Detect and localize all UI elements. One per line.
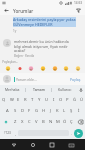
staticText: Beğen · Yanıtla <box>14 54 35 58</box>
button[interactable]: Shift <box>0 116 11 127</box>
staticText: , <box>15 131 16 136</box>
button[interactable]: Emoji 1 <box>16 66 23 71</box>
button[interactable]: Emoji 2 <box>27 66 34 71</box>
staticText: Paylaşılan... <box>0 60 85 64</box>
staticText: J <box>50 108 52 114</box>
button[interactable]: Ü <box>78 94 85 105</box>
button[interactable]: Kullanıcı <box>52 85 77 94</box>
button[interactable]: T <box>29 94 36 105</box>
staticText: D <box>21 108 25 114</box>
button[interactable]: U <box>43 94 50 105</box>
button[interactable]: ?123 <box>2 128 13 138</box>
button[interactable]: A <box>3 105 11 116</box>
button[interactable]: İ <box>75 105 82 116</box>
button[interactable]: X <box>19 116 26 127</box>
staticText: Z <box>14 119 17 125</box>
button[interactable]: Backspace <box>75 116 85 127</box>
button[interactable]: Emoji 5 <box>62 66 69 71</box>
button[interactable]: Ç <box>68 116 75 127</box>
button[interactable]: Emoji 4 <box>51 66 58 71</box>
button[interactable]: D <box>19 105 26 116</box>
staticText: S <box>14 108 17 114</box>
button[interactable]: N <box>47 116 54 127</box>
staticText: U <box>45 97 49 103</box>
staticText: B <box>42 119 45 125</box>
staticText: O <box>59 97 63 103</box>
staticText: mehmet.demir bu ürün hakkında bilgi alma… <box>14 39 69 53</box>
button[interactable]: M <box>54 116 61 127</box>
button[interactable]: Ğ <box>71 94 78 105</box>
button[interactable]: Ö <box>61 116 68 127</box>
button[interactable]: C <box>26 116 33 127</box>
staticText: Ü <box>80 97 84 103</box>
button[interactable]: P <box>64 94 71 105</box>
button[interactable]: mehmet.demir bu ürün hakkında bilgi alma… <box>3 39 82 58</box>
button[interactable]: Filter <box>75 7 82 14</box>
staticText: Kullanıcı <box>58 87 72 92</box>
button[interactable]: V <box>33 116 40 127</box>
button[interactable]: Period <box>69 128 74 138</box>
button[interactable]: Z <box>11 116 19 127</box>
button[interactable]: Recents <box>47 140 57 150</box>
button[interactable]: Q <box>0 94 8 105</box>
button[interactable]: Hide keyboard <box>66 140 76 150</box>
staticText: N <box>49 119 53 125</box>
staticText: A <box>6 108 9 114</box>
staticText: R <box>24 97 27 103</box>
staticText: C <box>28 119 31 125</box>
button[interactable]: Ş <box>68 105 75 116</box>
staticText: . <box>71 131 72 136</box>
button[interactable]: S <box>11 105 19 116</box>
button[interactable]: Emoji 0 <box>4 66 11 71</box>
button[interactable]: Send <box>74 129 83 138</box>
staticText: Ç <box>70 119 73 125</box>
button[interactable]: Comma <box>13 128 18 138</box>
staticText: İ <box>78 108 80 114</box>
staticText: H <box>42 108 46 114</box>
button[interactable]: L <box>61 105 68 116</box>
staticText: G <box>35 108 39 114</box>
button[interactable]: Back <box>9 140 19 150</box>
button[interactable]: O <box>57 94 64 105</box>
button[interactable]: F <box>26 105 33 116</box>
button[interactable]: R <box>22 94 29 105</box>
staticText: Merhaba <box>5 87 20 92</box>
staticText: Ş <box>70 108 73 114</box>
staticText: Arkadaş resimlerini paylaşıyor yoksa GÜV… <box>13 17 76 27</box>
button[interactable]: Yorum ekle... <box>14 77 67 82</box>
staticText: Q <box>2 97 6 103</box>
button[interactable]: B <box>40 116 47 127</box>
staticText: M <box>56 119 60 125</box>
button[interactable]: Emoji 6 <box>74 66 81 71</box>
button[interactable]: Home <box>28 140 38 150</box>
button[interactable]: W <box>8 94 15 105</box>
staticText: L <box>63 108 66 114</box>
button[interactable]: Y <box>36 94 43 105</box>
staticText: P <box>66 97 69 103</box>
button[interactable]: Emoji 3 <box>39 66 46 71</box>
button[interactable]: Tamam <box>26 85 51 94</box>
staticText: I <box>53 97 55 103</box>
button[interactable]: Back <box>3 7 10 14</box>
staticText: 14:53 <box>74 1 83 5</box>
staticText: Ö <box>63 119 67 125</box>
button[interactable]: H <box>40 105 47 116</box>
button[interactable]: I <box>50 94 57 105</box>
button[interactable]: Arkadaş resimlerini paylaşıyor yoksa GÜV… <box>13 17 81 33</box>
staticText: Y <box>38 97 41 103</box>
staticText: Tamam <box>33 87 45 92</box>
staticText: V <box>35 119 38 125</box>
staticText: X <box>21 119 24 125</box>
staticText: Yorumlar <box>13 8 34 14</box>
button[interactable]: K <box>54 105 61 116</box>
button[interactable]: Merhaba <box>0 85 25 94</box>
button[interactable]: E <box>15 94 22 105</box>
button[interactable]: G <box>33 105 40 116</box>
staticText: E <box>17 97 20 103</box>
staticText: F <box>28 108 31 114</box>
staticText: Paylaş <box>70 77 81 82</box>
button[interactable]: Voice input <box>77 85 85 94</box>
button[interactable]: Paylaş <box>69 76 82 83</box>
button[interactable]: J <box>47 105 54 116</box>
